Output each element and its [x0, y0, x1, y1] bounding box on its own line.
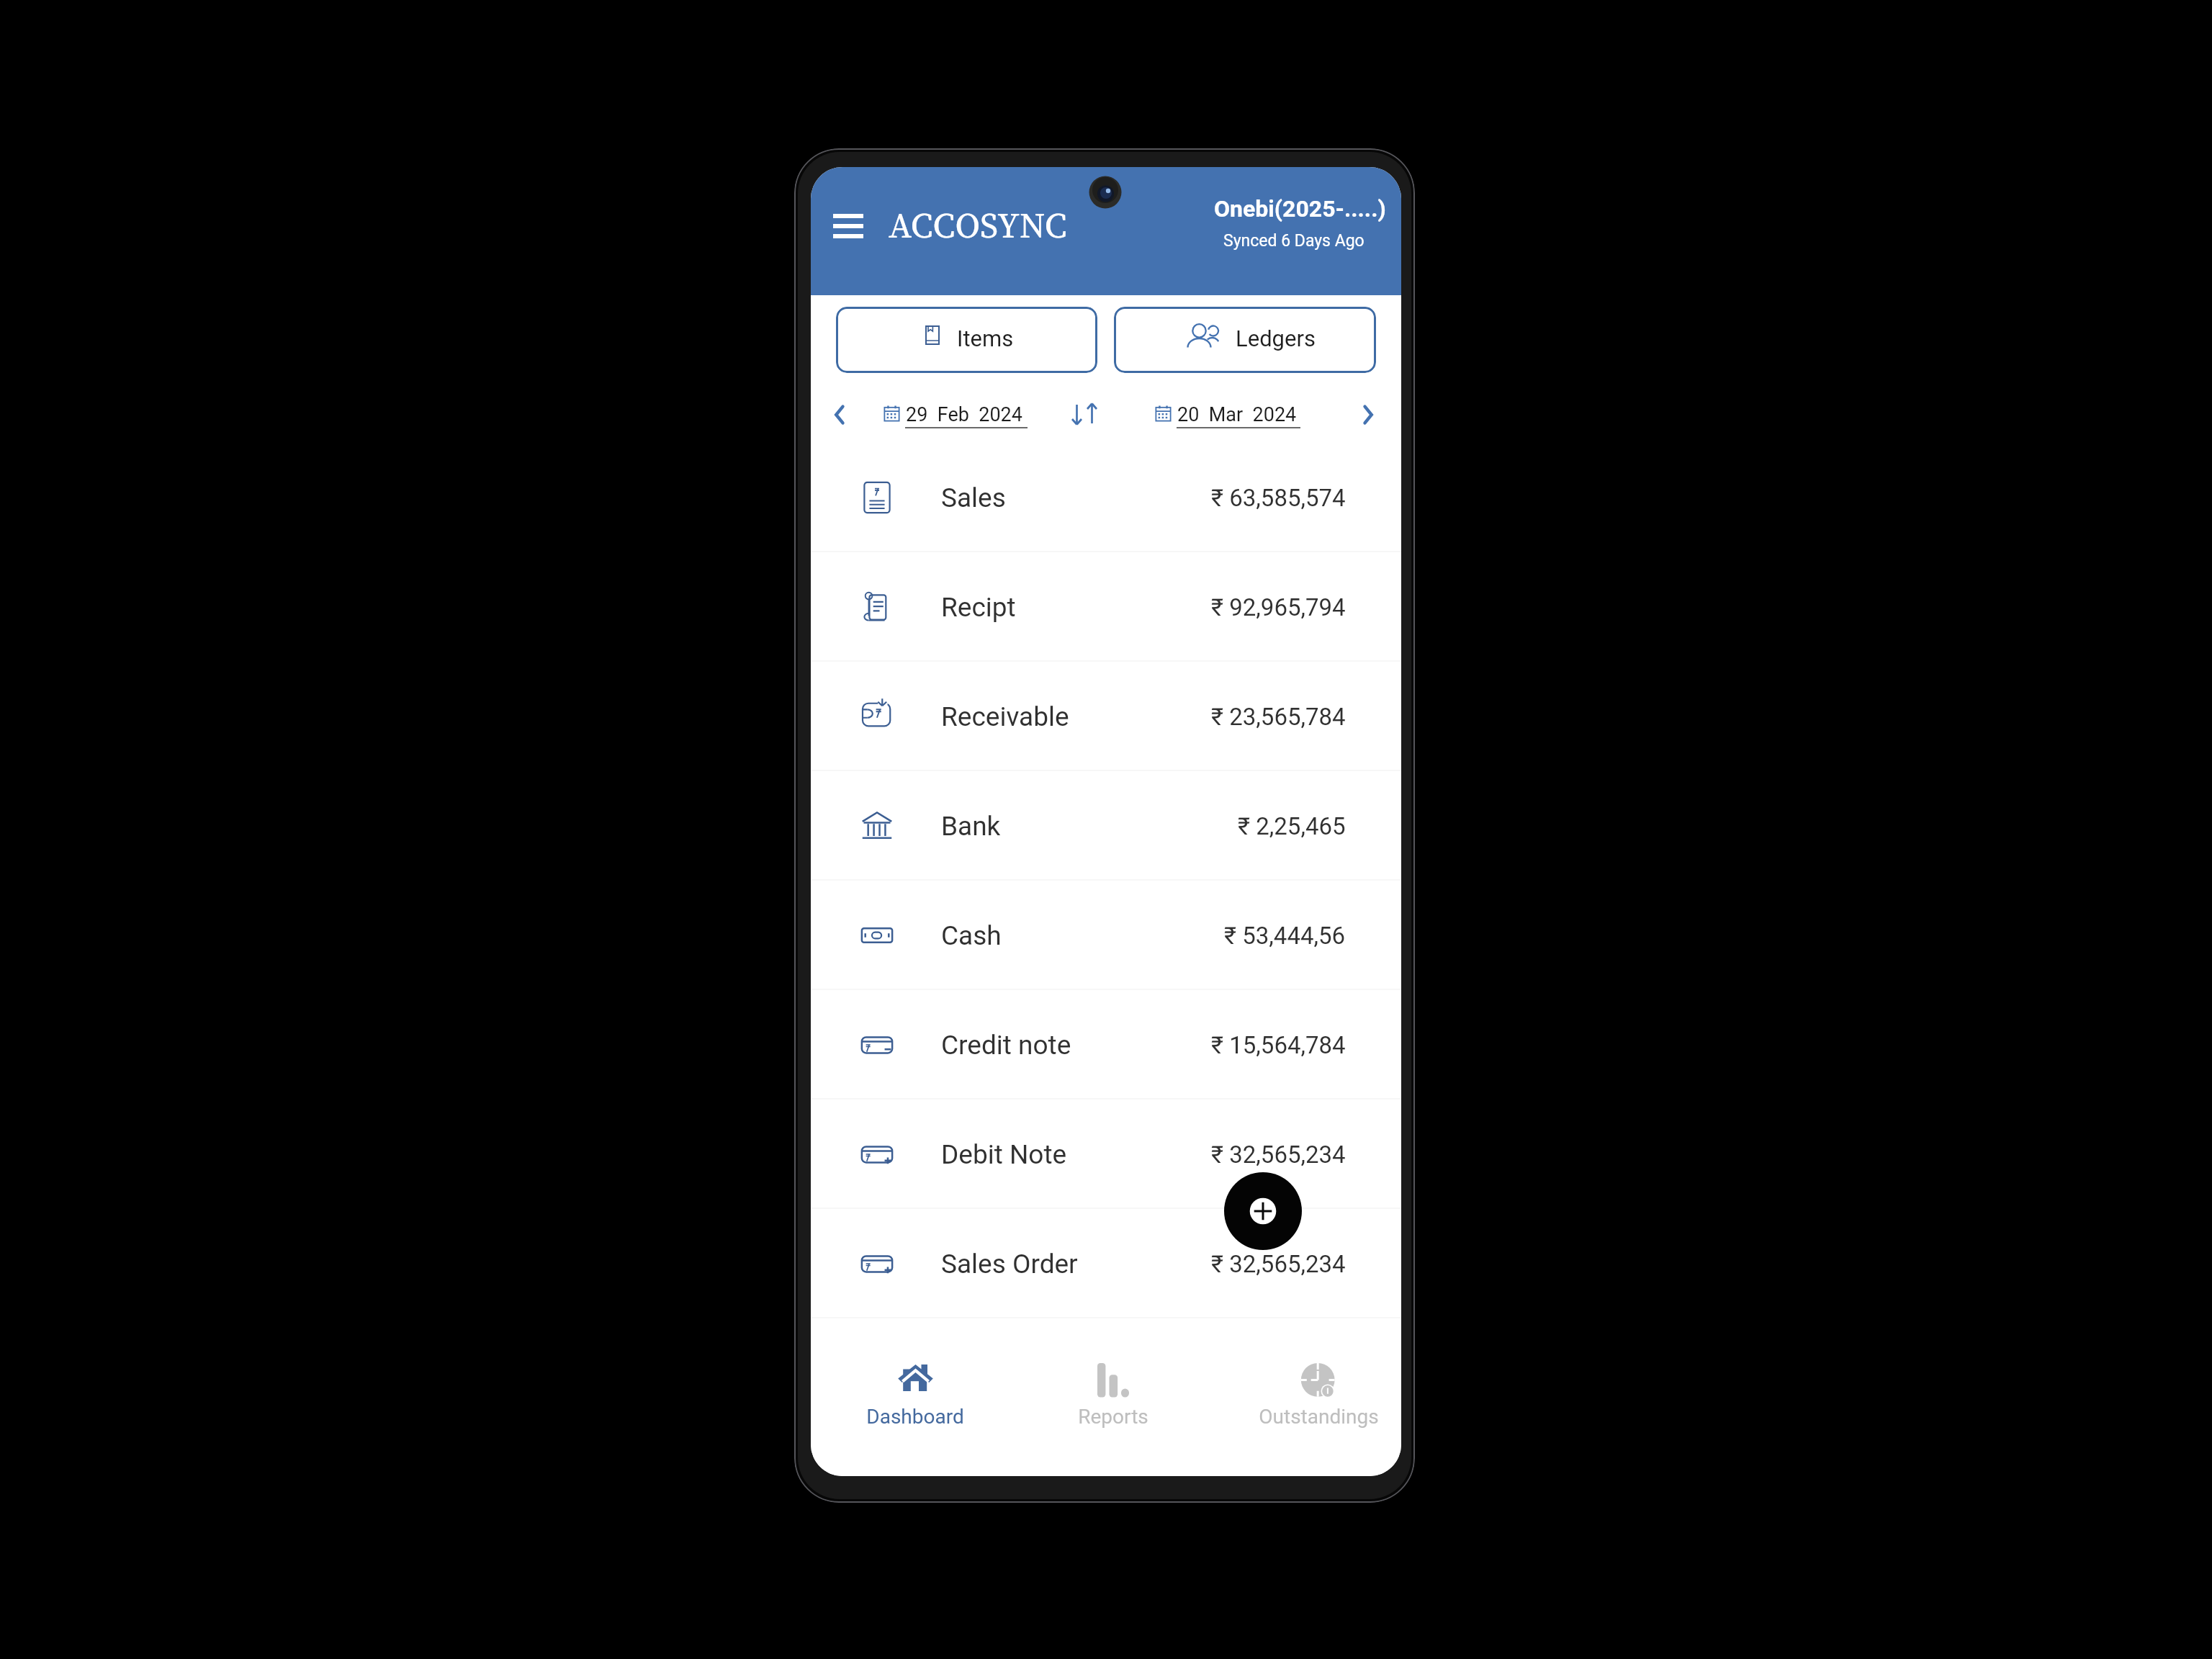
button[interactable]: 29 Feb 2024 — [884, 400, 1028, 431]
button[interactable]: 20 Mar 2024 — [1155, 400, 1301, 431]
staticText: Dashboard — [866, 1405, 964, 1429]
staticText: 29 Feb 2024 — [906, 403, 1022, 426]
button[interactable]: Next period — [1349, 395, 1387, 433]
button[interactable]: Previous period — [820, 395, 858, 433]
button[interactable]: Reports — [1038, 1321, 1189, 1476]
staticText: 20 Mar 2024 — [1177, 403, 1297, 426]
button[interactable]: Debit Note — [811, 1100, 1401, 1209]
staticText: ₹ 53,444,56 — [1224, 922, 1346, 950]
staticText: Cash — [941, 920, 1002, 951]
staticText: Synced 6 Days Ago — [1223, 231, 1364, 251]
staticText: Receivable — [941, 701, 1069, 732]
staticText: Reports — [1078, 1405, 1148, 1429]
staticText: Onebi(2025-.....) — [1214, 195, 1386, 222]
staticText: Ledgers — [1236, 325, 1316, 351]
staticText: Bank — [941, 811, 1001, 842]
staticText: ₹ 15,564,784 — [1211, 1031, 1346, 1059]
button[interactable] — [836, 307, 1097, 373]
button[interactable]: Add — [1224, 1172, 1302, 1250]
staticText: ACCOSYNC — [889, 201, 1067, 249]
button[interactable]: Recipt — [811, 552, 1401, 662]
staticText: ₹ 92,965,794 — [1211, 593, 1346, 621]
button[interactable]: Receivable — [811, 662, 1401, 771]
staticText: Recipt — [941, 592, 1016, 623]
button[interactable]: Sales — [811, 443, 1401, 552]
staticText: Items — [957, 325, 1014, 351]
staticText: ₹ 23,565,784 — [1211, 703, 1346, 731]
staticText: Credit note — [941, 1030, 1071, 1061]
staticText: Debit Note — [941, 1139, 1067, 1170]
button[interactable] — [1114, 307, 1376, 373]
staticText: ₹ 2,25,465 — [1238, 812, 1346, 840]
button[interactable]: Bank — [811, 771, 1401, 881]
button[interactable]: Onebi(2025-.....) — [1113, 189, 1386, 282]
button[interactable]: Dashboard — [840, 1321, 991, 1476]
staticText: Outstandings — [1259, 1405, 1379, 1429]
staticText: ₹ 63,585,574 — [1211, 484, 1346, 512]
staticText: ₹ 32,565,234 — [1211, 1141, 1346, 1169]
staticText: Sales Order — [941, 1249, 1078, 1280]
button[interactable]: Sales Order — [811, 1209, 1401, 1318]
staticText: ₹ 32,565,234 — [1211, 1250, 1346, 1278]
button[interactable]: Outstandings — [1243, 1321, 1394, 1476]
button[interactable]: Sort order — [1064, 394, 1105, 434]
button[interactable]: Credit note — [811, 990, 1401, 1100]
button[interactable]: Open navigation menu — [824, 206, 873, 246]
button[interactable]: Cash — [811, 881, 1401, 990]
staticText: Sales — [941, 482, 1006, 513]
